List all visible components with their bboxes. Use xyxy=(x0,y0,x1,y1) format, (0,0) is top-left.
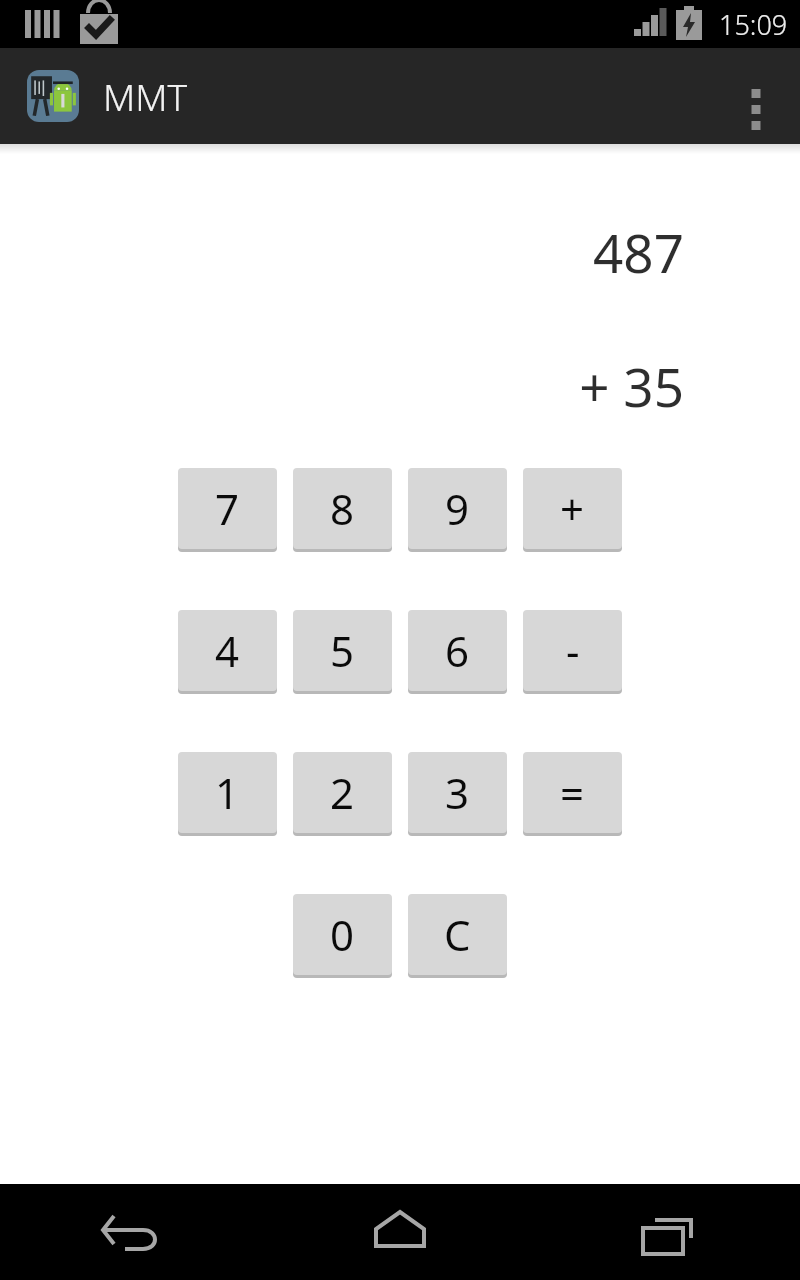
staticText: 4 xyxy=(215,622,240,679)
button[interactable]: 0 xyxy=(293,894,392,978)
staticText: 0 xyxy=(330,906,355,963)
button[interactable]: - xyxy=(523,610,622,694)
staticText: MMT xyxy=(103,71,188,121)
button[interactable]: 7 xyxy=(178,468,277,552)
button[interactable]: 8 xyxy=(293,468,392,552)
button[interactable]: + xyxy=(523,468,622,552)
staticText: 3 xyxy=(445,764,470,821)
staticText: = xyxy=(560,764,585,821)
button[interactable]: 5 xyxy=(293,610,392,694)
button[interactable]: Back xyxy=(0,1184,266,1280)
staticText: + xyxy=(560,480,585,537)
staticText: - xyxy=(566,622,580,679)
button[interactable]: 2 xyxy=(293,752,392,836)
staticText: 15:09 xyxy=(719,6,788,43)
button[interactable]: = xyxy=(523,752,622,836)
staticText: 6 xyxy=(445,622,470,679)
button[interactable]: 1 xyxy=(178,752,277,836)
staticText: C xyxy=(444,906,471,963)
staticText: 9 xyxy=(445,480,470,537)
staticText: 1 xyxy=(215,764,240,821)
button[interactable]: 3 xyxy=(408,752,507,836)
staticText: + 35 xyxy=(579,350,684,422)
staticText: 5 xyxy=(330,622,355,679)
button[interactable]: 4 xyxy=(178,610,277,694)
button[interactable]: 9 xyxy=(408,468,507,552)
staticText: 487 xyxy=(593,216,684,288)
button[interactable]: Recent apps xyxy=(533,1184,800,1280)
staticText: 8 xyxy=(330,480,355,537)
button[interactable]: More options xyxy=(720,60,792,132)
staticText: 2 xyxy=(330,764,355,821)
button[interactable]: C xyxy=(408,894,507,978)
staticText: 7 xyxy=(215,480,240,537)
button[interactable]: Home xyxy=(266,1184,533,1280)
button[interactable]: 6 xyxy=(408,610,507,694)
